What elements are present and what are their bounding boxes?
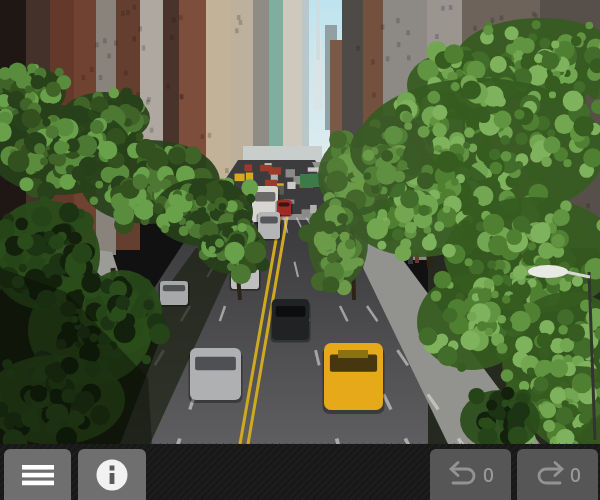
staticText: 0 [570, 462, 581, 488]
button[interactable] [78, 449, 146, 500]
button[interactable]: 0 [430, 449, 511, 500]
staticText: 0 [483, 462, 494, 488]
button[interactable] [4, 449, 71, 500]
button[interactable]: 0 [517, 449, 598, 500]
